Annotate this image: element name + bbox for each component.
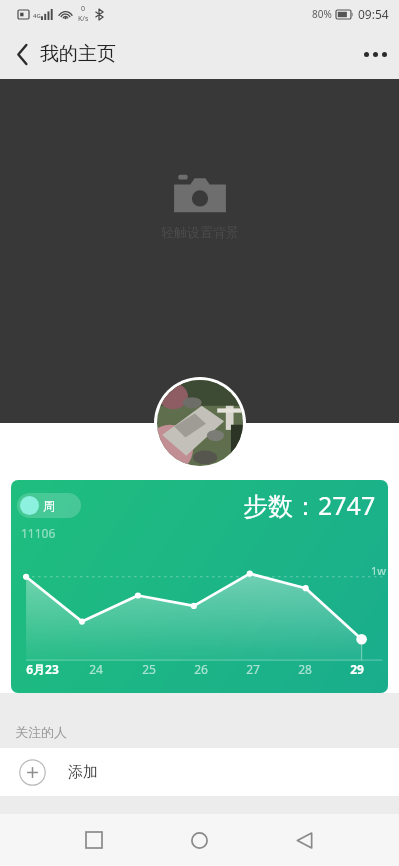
staticText: K/s	[78, 14, 89, 24]
staticText: 25	[142, 661, 156, 677]
staticText: 6月23	[26, 661, 59, 677]
staticText: 80%	[312, 7, 332, 21]
button[interactable]: More options	[351, 30, 399, 78]
staticText: 26	[194, 661, 208, 677]
button[interactable]: 周	[17, 493, 81, 518]
button[interactable]: 周	[11, 480, 388, 693]
staticText: 我的主页	[40, 42, 116, 66]
button[interactable]: Back	[278, 814, 330, 866]
staticText: 28	[298, 661, 312, 677]
staticText: 29	[350, 661, 364, 677]
staticText: 周	[43, 498, 55, 513]
staticText: 添加	[68, 763, 98, 782]
button[interactable]: Home	[173, 814, 225, 866]
staticText: 27	[246, 661, 260, 677]
staticText: 4G	[33, 12, 41, 20]
button[interactable]: Recent apps	[68, 814, 120, 866]
staticText: 09:54	[358, 6, 389, 22]
button[interactable]: Back	[0, 32, 44, 76]
staticText: 1w	[371, 563, 386, 578]
staticText: 轻触设置背景	[161, 224, 239, 240]
staticText: 11106	[21, 525, 56, 541]
button[interactable]: 添加	[0, 748, 399, 796]
staticText: 步数：2747	[243, 488, 376, 522]
staticText: 0	[81, 4, 86, 14]
button[interactable]: Set background	[0, 79, 399, 423]
staticText: 24	[89, 661, 103, 677]
staticText: 关注的人	[15, 724, 67, 740]
button[interactable]: Profile photo	[157, 380, 243, 466]
